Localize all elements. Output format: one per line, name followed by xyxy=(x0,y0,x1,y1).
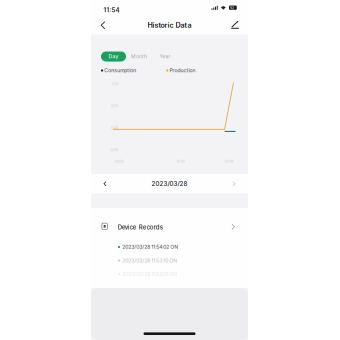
button[interactable]: Next day xyxy=(226,174,242,193)
staticText: 11:54 xyxy=(103,6,119,14)
staticText: -0.05 xyxy=(109,148,118,152)
button[interactable]: Month xyxy=(126,51,152,61)
staticText: Production xyxy=(168,67,195,73)
button[interactable]: Previous day xyxy=(97,174,113,193)
staticText: Year xyxy=(159,53,170,59)
staticText: Historic Data xyxy=(147,21,191,30)
staticText: 0.10 xyxy=(112,82,118,86)
staticText: Month xyxy=(131,53,147,59)
button[interactable]: Day xyxy=(101,51,126,61)
staticText: 23:00 xyxy=(224,159,233,164)
button[interactable]: Year xyxy=(152,51,178,61)
staticText: 12:00 xyxy=(176,159,184,164)
button[interactable]: Device Records xyxy=(91,217,248,237)
staticText: 2023/03/28 11:53:10 ON xyxy=(120,257,177,264)
staticText: 2023/03/28 xyxy=(151,180,187,187)
staticText: 52 xyxy=(230,6,234,10)
staticText: 2023/03/28 11:54:02 ON xyxy=(120,244,178,250)
staticText: Consumption xyxy=(103,67,136,73)
button[interactable]: Back xyxy=(95,16,111,34)
button[interactable]: Edit xyxy=(227,16,243,34)
staticText: 0.00 xyxy=(111,126,118,130)
staticText: 00:00 xyxy=(114,159,123,164)
staticText: 2023/03/28 11:52:01 ON xyxy=(120,271,177,277)
staticText: Day xyxy=(108,53,118,59)
staticText: 0.05 xyxy=(111,104,118,108)
staticText: Device Records xyxy=(118,224,163,231)
